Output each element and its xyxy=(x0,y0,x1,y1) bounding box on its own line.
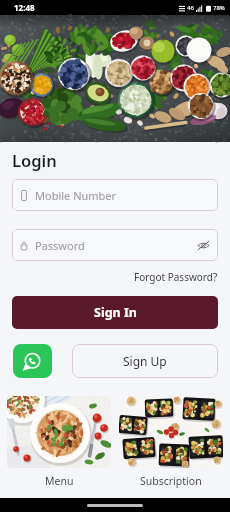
staticText: 78% xyxy=(213,4,225,12)
button[interactable]: Sign in with WhatsApp xyxy=(13,344,52,378)
staticText: Sign Up xyxy=(123,353,167,369)
staticText: Mobile Number xyxy=(35,188,117,203)
button[interactable]: Menu xyxy=(7,396,111,488)
staticText: Subscription xyxy=(140,474,202,488)
button[interactable]: Sign Up xyxy=(72,344,218,378)
staticText: Login xyxy=(12,149,57,171)
staticText: Forgot Password? xyxy=(134,270,218,284)
button[interactable]: Sign In xyxy=(12,296,218,329)
button[interactable]: Show password xyxy=(196,238,210,252)
staticText: Menu xyxy=(45,474,74,488)
button[interactable]: Subscription xyxy=(119,396,223,488)
button[interactable]: Mobile Number xyxy=(12,179,218,211)
button[interactable]: Password xyxy=(12,229,218,261)
staticText: Password xyxy=(35,238,85,253)
staticText: Sign In xyxy=(94,304,137,321)
staticText: 12:48 xyxy=(14,2,35,13)
staticText: 46 xyxy=(187,4,194,12)
button[interactable]: Forgot Password? xyxy=(130,269,218,285)
